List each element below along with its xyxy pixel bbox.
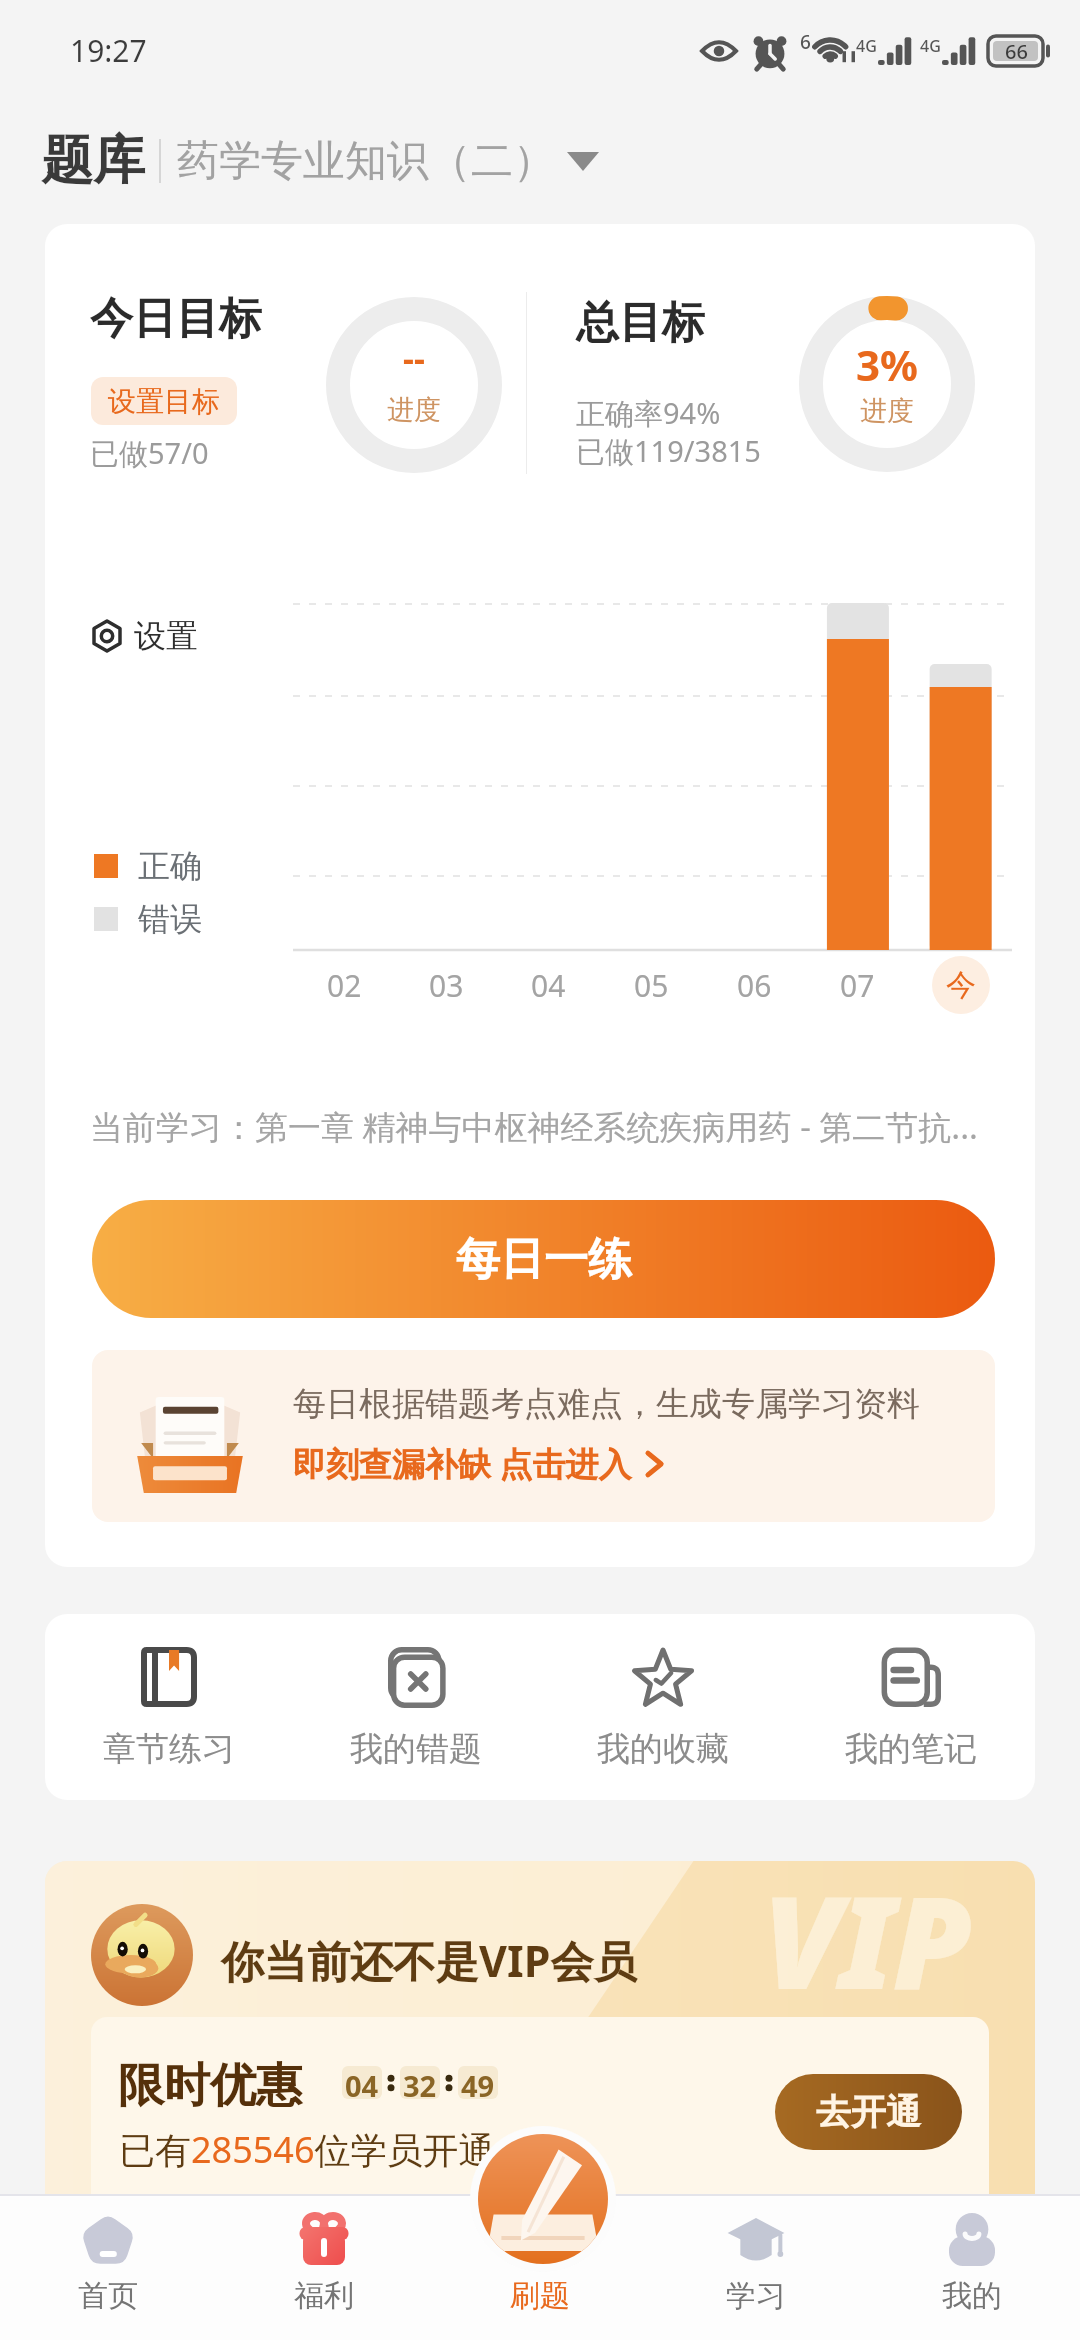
button[interactable]: 设置 [90,616,198,656]
staticText: 06 [737,965,772,1006]
button[interactable]: 刷题 [478,2134,608,2264]
staticText: 已做119/3815 [576,431,761,471]
button[interactable]: 我的错题 [292,1614,539,1800]
staticText: 49 [461,2066,495,2099]
staticText: -- [403,335,425,381]
staticText: 04 [345,2066,379,2099]
button[interactable]: 首页 [0,2194,216,2340]
button[interactable]: 我的收藏 [539,1614,787,1800]
staticText: 19:27 [70,30,147,71]
staticText: 题库 [41,128,145,194]
staticText: 正确 [138,846,202,886]
staticText: 去开通 [816,2090,921,2134]
staticText: 你当前还不是VIP会员 [221,1931,637,1990]
staticText: 首页 [78,2277,138,2315]
button[interactable]: VIP [45,1861,1035,2221]
staticText: 每日根据错题考点难点，生成专属学习资料 [293,1383,920,1425]
staticText: 进度 [387,393,441,427]
staticText: 66 [1005,38,1028,65]
staticText: 今 [946,966,976,1004]
staticText: 刷题 [510,2277,570,2315]
staticText: 福利 [294,2277,354,2315]
button[interactable]: 每日一练 [92,1200,995,1318]
staticText: 药学专业知识（二） [177,135,555,188]
staticText: VIP [763,1861,971,2026]
staticText: 错误 [138,899,202,939]
staticText: 02 [327,965,362,1006]
staticText: 进度 [860,394,914,428]
button[interactable]: 每日根据错题考点难点，生成专属学习资料 [92,1350,995,1522]
staticText: 03 [429,965,464,1006]
button[interactable]: 药学专业知识（二） [177,135,599,188]
staticText: 每日一练 [456,1232,632,1287]
button[interactable]: 章节练习 [45,1614,292,1800]
staticText: 4G [856,35,877,57]
staticText: 我的笔记 [845,1728,977,1770]
staticText: 章节练习 [103,1728,235,1770]
staticText: 4G [920,35,941,57]
staticText: 今日目标 [90,292,262,346]
staticText: 04 [531,965,566,1006]
staticText: 我的错题 [350,1728,482,1770]
button[interactable]: 学习 [648,2194,864,2340]
staticText: 6 [800,29,811,55]
staticText: 3% [856,336,918,393]
staticText: 学习 [726,2277,786,2315]
staticText: 我的收藏 [597,1728,729,1770]
staticText: 我的 [942,2277,1002,2315]
staticText: 05 [634,965,669,1006]
button[interactable]: 刷题 [432,2194,648,2340]
button[interactable]: 我的笔记 [787,1614,1035,1800]
staticText: 即刻查漏补缺 点击进入 [293,1441,632,1486]
staticText: 设置目标 [108,384,220,419]
staticText: 设置 [134,616,198,656]
staticText: 32 [403,2066,437,2099]
staticText: 正确率94% [576,393,721,433]
button[interactable]: 福利 [216,2194,432,2340]
staticText: 限时优惠 [118,2057,302,2115]
staticText: 总目标 [576,296,705,350]
button[interactable]: 设置目标 [91,377,237,425]
staticText: 已做57/0 [90,433,209,473]
button[interactable]: 我的 [864,2194,1080,2340]
button[interactable]: 去开通 [775,2074,962,2150]
staticText: 当前学习：第一章 精神与中枢神经系统疾病用药 - 第二节抗... [90,1104,1020,1149]
staticText: 07 [840,965,875,1006]
staticText: 已有285546位学员开通 [119,2125,495,2174]
